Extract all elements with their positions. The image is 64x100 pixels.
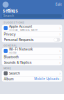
staticText: MORE xyxy=(3,67,11,70)
button[interactable]: Apple Account xyxy=(2,25,62,31)
button[interactable]: Bluetooth xyxy=(2,54,62,60)
button[interactable]: Edit xyxy=(55,3,61,7)
staticText: › xyxy=(59,32,60,36)
staticText: › xyxy=(59,49,60,53)
staticText: Search xyxy=(9,71,20,75)
button[interactable]: Personal Requests xyxy=(2,37,62,42)
button[interactable]: Profile xyxy=(3,2,9,8)
staticText: Apple Account xyxy=(9,24,32,28)
staticText: › xyxy=(59,55,60,59)
staticText: Mobile Uploads xyxy=(34,77,59,81)
button[interactable]: Wi-Fi Network xyxy=(2,48,62,54)
staticText: Personal Requests xyxy=(4,38,34,42)
staticText: Bluetooth xyxy=(4,55,19,59)
staticText: › xyxy=(59,77,60,81)
staticText: iCloud, Media & More xyxy=(9,28,37,32)
staticText: › xyxy=(59,71,60,75)
button[interactable]: Sounds & Haptics xyxy=(2,60,62,65)
staticText: Edit xyxy=(55,3,61,7)
staticText: Search xyxy=(3,14,14,18)
button[interactable]: Search xyxy=(2,14,62,18)
staticText: SUGGESTIONS xyxy=(3,21,24,24)
staticText: GENERAL xyxy=(3,44,16,47)
button[interactable]: Privacy xyxy=(2,32,62,37)
button[interactable]: Search xyxy=(2,70,62,76)
staticText: Sounds & Haptics xyxy=(4,61,32,65)
staticText: Home xyxy=(9,51,16,54)
staticText: Wi-Fi Network xyxy=(9,47,33,51)
staticText: › xyxy=(59,60,60,65)
staticText: Album xyxy=(4,77,14,81)
button[interactable]: Album xyxy=(2,76,62,82)
staticText: Settings xyxy=(3,9,18,13)
staticText: › xyxy=(59,26,60,30)
staticText: Privacy xyxy=(4,32,16,36)
